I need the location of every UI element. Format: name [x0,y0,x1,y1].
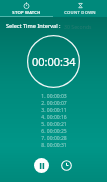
button[interactable]: Lap [59,158,74,173]
staticText: 7. 00:00:28 [41,135,67,142]
staticText: 8. 00:00:31 [41,142,67,148]
staticText: 6. 00:00:25 [41,128,67,135]
button[interactable]: 3. 00:00:11 [0,107,107,114]
button[interactable]: STOP WATCH [0,0,53,17]
button[interactable]: 8. 00:00:31 [0,142,107,148]
staticText: 1. 00:00:03 [41,93,67,100]
button[interactable]: 2. 00:00:07 [0,100,107,107]
button[interactable]: COUNT DOWN [53,0,107,17]
staticText: STOP WATCH [12,10,41,16]
button[interactable]: 30 Seconds [64,23,92,30]
staticText: 2. 00:00:07 [41,100,67,107]
button[interactable]: 5. 00:00:21 [0,121,107,128]
button[interactable]: 6. 00:00:25 [0,128,107,135]
staticText: 30 Seconds [64,23,92,30]
staticText: 3. 00:00:11 [41,107,67,114]
button[interactable]: Pause [34,158,49,173]
staticText: 5. 00:00:21 [41,121,67,128]
staticText: 00:00:34 [32,54,76,69]
staticText: 4. 00:00:16 [41,114,67,121]
button[interactable]: 1. 00:00:03 [0,93,107,100]
button[interactable]: 4. 00:00:16 [0,114,107,121]
staticText: Select Time Interval : [6,22,61,30]
button[interactable]: 7. 00:00:28 [0,135,107,142]
staticText: COUNT DOWN [64,10,96,16]
